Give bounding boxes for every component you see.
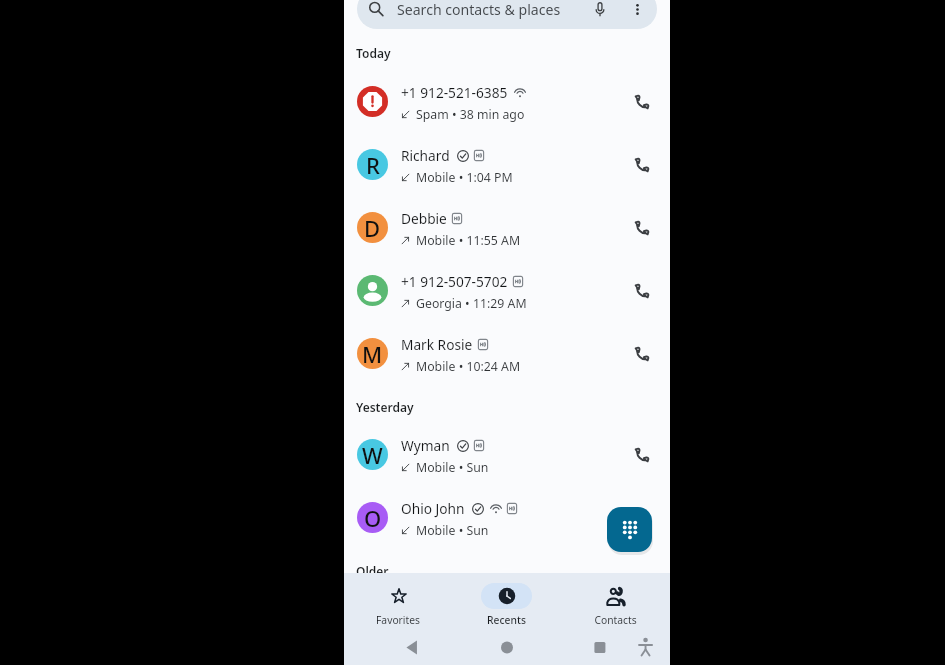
staticText: Mark Rosie (401, 335, 473, 354)
button[interactable]: Call Wyman (622, 435, 662, 475)
staticText: Mobile • Sun (416, 522, 489, 539)
button[interactable]: Contacts (561, 573, 670, 630)
staticText: Spam • 38 min ago (416, 106, 525, 123)
staticText: Mobile • 11:55 AM (416, 232, 521, 249)
button[interactable]: Call +1 912-507-5702 (622, 271, 662, 311)
button[interactable]: Recents (452, 573, 561, 630)
staticText: Favorites (376, 613, 420, 627)
button[interactable]: More options (626, 0, 648, 20)
button[interactable]: Call Debbie (622, 208, 662, 248)
button[interactable]: R (344, 133, 670, 196)
staticText: Georgia • 11:29 AM (416, 295, 527, 312)
button[interactable]: Call Ohio John (622, 498, 662, 538)
button[interactable]: O (344, 486, 670, 549)
staticText: Recents (487, 613, 526, 627)
staticText: Yesterday (356, 399, 414, 415)
staticText: Contacts (594, 613, 637, 627)
button[interactable]: Call +1 912-521-6385 (622, 82, 662, 122)
staticText: +1 912-507-5702 (401, 272, 508, 291)
staticText: Ohio John (401, 499, 465, 518)
staticText: Today (356, 45, 391, 61)
button[interactable]: Open dialpad (607, 507, 652, 552)
button[interactable]: Call Mark Rosie (622, 334, 662, 374)
staticText: Older (356, 563, 389, 579)
staticText: W (362, 440, 383, 470)
staticText: Mobile • 10:24 AM (416, 358, 521, 375)
button[interactable]: D (344, 196, 670, 259)
button[interactable]: Search contacts & places (357, 0, 657, 29)
staticText: M (362, 339, 383, 369)
button[interactable]: W (344, 423, 670, 486)
button[interactable]: Favorites (344, 573, 452, 630)
staticText: D (364, 213, 381, 243)
staticText: O (364, 503, 382, 533)
staticText: R (366, 150, 380, 180)
staticText: Mobile • Sun (416, 459, 489, 476)
button[interactable]: Call Richard (622, 145, 662, 185)
button[interactable]: +1 912-507-5702 (344, 259, 670, 322)
button[interactable]: M (344, 322, 670, 385)
staticText: Mobile • 1:04 PM (416, 169, 513, 186)
button[interactable]: +1 912-521-6385 (344, 70, 670, 133)
staticText: Richard (401, 146, 450, 165)
staticText: Debbie (401, 209, 447, 228)
staticText: Wyman (401, 436, 450, 455)
button[interactable]: Voice search (587, 0, 613, 22)
staticText: +1 912-521-6385 (401, 83, 508, 102)
staticText: Search contacts & places (397, 0, 561, 19)
